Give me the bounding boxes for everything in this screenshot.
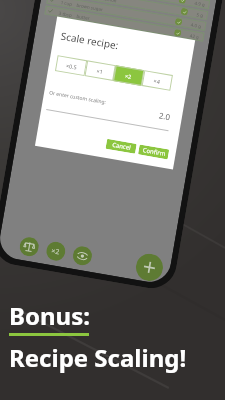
staticText: ground cinnamon bbox=[79, 0, 117, 3]
staticText: Confirm bbox=[142, 146, 166, 158]
button[interactable]: ×4 bbox=[142, 70, 173, 91]
button[interactable]: Scale recipe bbox=[18, 236, 40, 258]
staticText: 42 g bbox=[189, 32, 200, 40]
staticText: ×2 bbox=[125, 72, 133, 80]
button[interactable]: 3 tbsp bbox=[44, 5, 205, 42]
staticText: 4.0 g bbox=[190, 21, 202, 29]
button[interactable]: ×0.5 bbox=[55, 55, 87, 76]
staticText: Recipe Scaling! bbox=[9, 341, 187, 374]
button[interactable]: 1 tsp bbox=[50, 0, 210, 9]
button[interactable]: 1 cup bbox=[46, 0, 206, 31]
staticText: ×4 bbox=[153, 77, 161, 85]
staticText: 4.9 g bbox=[194, 0, 206, 8]
button[interactable]: ×2 bbox=[113, 65, 144, 86]
button[interactable]: Multiply quantities bbox=[45, 240, 67, 262]
button[interactable]: Confirm bbox=[138, 144, 169, 159]
staticText: 1 cup bbox=[60, 0, 73, 7]
button[interactable]: 2 tsps bbox=[48, 0, 208, 20]
staticText: 5 g bbox=[196, 11, 204, 18]
staticText: ×1 bbox=[96, 67, 104, 75]
staticText: butter bbox=[76, 13, 91, 21]
button[interactable]: Cancel bbox=[105, 139, 137, 154]
button[interactable]: Preview recipe bbox=[71, 245, 93, 267]
button[interactable]: ×1 bbox=[84, 60, 116, 81]
staticText: Bonus: bbox=[9, 299, 90, 332]
staticText: ×0.5 bbox=[65, 62, 77, 71]
staticText: 3 tbsp bbox=[58, 10, 73, 18]
button[interactable]: Add ingredient bbox=[134, 252, 165, 283]
staticText: 2.0 bbox=[158, 109, 172, 122]
staticText: Or enter custom scaling: bbox=[48, 89, 107, 106]
staticText: ×2 bbox=[50, 246, 61, 257]
staticText: brown sugar bbox=[76, 2, 104, 12]
staticText: Cancel bbox=[112, 141, 132, 152]
staticText: Scale recipe: bbox=[60, 29, 120, 52]
